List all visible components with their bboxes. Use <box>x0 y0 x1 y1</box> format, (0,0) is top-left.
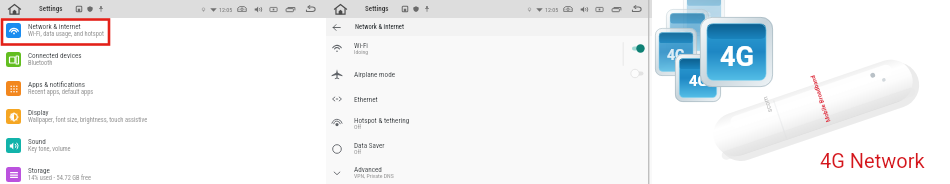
staticText: Data Saver <box>354 141 385 149</box>
staticText: Settings <box>39 5 63 13</box>
staticText: Bluetooth <box>28 59 53 67</box>
staticText: 4G <box>667 47 685 63</box>
staticText: Wi-Fi, data usage, and hotspot <box>28 30 104 38</box>
staticText: Network & internet <box>355 23 404 31</box>
staticText: Ethernet <box>354 95 378 103</box>
staticText: 12:05 <box>545 6 559 13</box>
button[interactable]: Advanced <box>326 161 652 184</box>
button[interactable]: Screenshot <box>237 4 247 14</box>
staticText: Wallpaper, font size, brightness, touch … <box>28 116 148 124</box>
button[interactable]: USB <box>98 6 104 12</box>
button[interactable]: Airplane mode <box>326 61 652 86</box>
button[interactable]: Volume <box>254 5 263 14</box>
staticText: Sound <box>28 137 46 145</box>
button[interactable]: Saved <box>402 6 408 12</box>
button[interactable]: Back <box>305 3 317 15</box>
button[interactable]: Volume <box>580 5 589 14</box>
button[interactable] <box>632 43 648 54</box>
staticText: Mobile Broadband <box>809 74 831 123</box>
button[interactable]: Network & internet <box>0 16 326 44</box>
staticText: Apps & notifications <box>28 80 86 88</box>
button[interactable]: Home <box>8 3 21 16</box>
button[interactable]: Home screen <box>269 5 278 14</box>
button[interactable]: Home <box>334 3 347 16</box>
button[interactable]: Home screen <box>595 5 604 14</box>
staticText: Display <box>28 108 49 116</box>
button[interactable]: Ethernet <box>326 86 652 111</box>
staticText: scom <box>761 95 774 113</box>
staticText: Key tone, volume <box>28 145 71 153</box>
staticText: 3G <box>679 28 696 43</box>
staticText: 14% used - 54.72 GB free <box>28 174 91 182</box>
button[interactable] <box>632 68 648 79</box>
button[interactable]: Data Saver <box>326 136 652 161</box>
staticText: Storage <box>28 166 50 174</box>
button[interactable]: Back <box>326 18 652 36</box>
button[interactable]: Recents <box>611 4 622 15</box>
button[interactable]: Wi-Fi <box>326 36 652 61</box>
button[interactable]: Recents <box>285 4 296 15</box>
staticText: Settings <box>365 5 389 13</box>
staticText: Airplane mode <box>354 70 396 78</box>
staticText: 4G <box>689 72 708 90</box>
staticText: Connected devices <box>28 51 82 59</box>
button[interactable]: USB <box>424 6 430 12</box>
button[interactable]: Apps & notifications <box>0 74 326 102</box>
staticText: Hotspot & tethering <box>354 116 410 124</box>
staticText: Off <box>354 149 362 156</box>
button[interactable]: Hotspot & tethering <box>326 111 652 136</box>
staticText: 4G Network <box>820 149 925 172</box>
staticText: Network & internet <box>28 22 81 30</box>
staticText: Advanced <box>354 165 382 173</box>
staticText: Idoing <box>354 49 369 56</box>
button[interactable]: Display <box>0 102 326 130</box>
button[interactable]: Connected devices <box>0 45 326 73</box>
button[interactable]: Back <box>631 3 643 15</box>
button[interactable]: Security <box>87 6 93 12</box>
button[interactable]: Saved <box>76 6 82 12</box>
button[interactable]: Storage <box>0 160 326 184</box>
staticText: 4G <box>720 41 754 73</box>
other: Back <box>332 23 341 32</box>
button[interactable]: Security <box>413 6 419 12</box>
button[interactable]: Screenshot <box>563 4 573 14</box>
staticText: VPN, Private DNS <box>354 173 394 180</box>
staticText: Wi-Fi <box>354 41 369 49</box>
staticText: 3G <box>696 10 712 24</box>
staticText: 12:05 <box>219 6 233 13</box>
staticText: Off <box>354 124 362 131</box>
button[interactable]: Sound <box>0 131 326 159</box>
staticText: Recent apps, default apps <box>28 88 94 96</box>
